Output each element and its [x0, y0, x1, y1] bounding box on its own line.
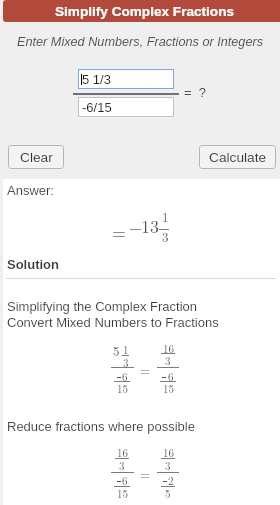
staticText: 2 [168, 473, 174, 489]
staticText: Answer: [7, 183, 54, 198]
button[interactable]: Calculate [199, 145, 276, 169]
staticText: 1 [123, 342, 129, 358]
staticText: 6 [168, 369, 174, 385]
button[interactable]: Simplify Complex Fractions [3, 0, 280, 22]
staticText: 16 [163, 341, 174, 357]
staticText: = [112, 219, 127, 245]
staticText: = ? [184, 85, 207, 100]
staticText: Enter Mixed Numbers, Fractions or Intege… [0, 35, 280, 49]
staticText: 5 [165, 486, 171, 502]
button[interactable]: 5 1/3 [78, 69, 174, 89]
staticText: 15 [163, 381, 174, 397]
button[interactable]: Clear [8, 145, 64, 169]
staticText: Solution [7, 257, 59, 272]
staticText: 3 [123, 355, 129, 371]
staticText: 5 [113, 341, 120, 359]
staticText: 3 [162, 227, 169, 245]
staticText: 1 [162, 207, 169, 225]
staticText: Convert Mixed Numbers to Fractions [7, 315, 219, 330]
staticText: 15 [117, 486, 128, 502]
staticText: 6 [122, 473, 128, 489]
staticText: 16 [117, 445, 128, 461]
staticText: 6 [122, 369, 128, 385]
staticText: 13 [141, 213, 159, 239]
staticText: 15 [117, 381, 128, 397]
staticText: Clear [20, 150, 53, 165]
staticText: 16 [163, 445, 174, 461]
staticText: = [140, 360, 151, 378]
staticText: Simplify Complex Fractions [55, 4, 235, 19]
staticText: 3 [119, 458, 125, 474]
staticText: Simplifying the Complex Fraction [7, 299, 198, 314]
staticText: Reduce fractions where possible [7, 419, 195, 434]
button[interactable]: -6/15 [78, 97, 174, 117]
staticText: Calculate [209, 150, 267, 165]
staticText: = [140, 464, 151, 482]
staticText: 5 1/3 [82, 72, 111, 87]
staticText: 3 [165, 458, 171, 474]
staticText: 3 [165, 353, 171, 369]
staticText: -6/15 [82, 100, 112, 115]
